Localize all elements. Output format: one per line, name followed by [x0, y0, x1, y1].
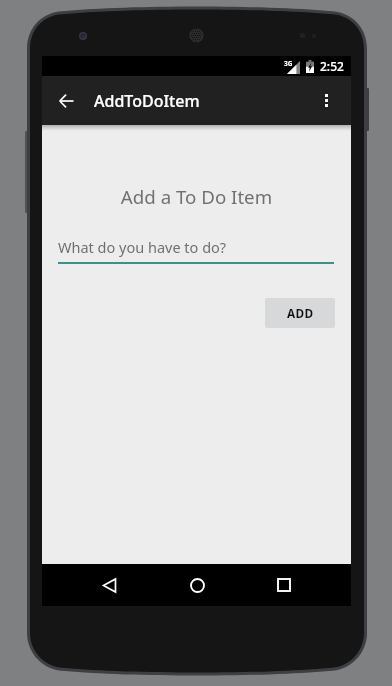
- staticText: What do you have to do?: [58, 237, 227, 257]
- staticText: Add a To Do Item: [42, 184, 351, 209]
- staticText: 2:52: [320, 58, 344, 74]
- staticText: 3G: [284, 59, 293, 68]
- button[interactable]: ADD: [265, 298, 335, 328]
- button[interactable]: More options: [305, 79, 348, 122]
- button[interactable]: Home: [176, 564, 218, 606]
- button[interactable]: What do you have to do?: [58, 237, 334, 264]
- button[interactable]: Navigate up: [45, 79, 88, 122]
- button[interactable]: Recents: [263, 564, 305, 606]
- staticText: ADD: [287, 305, 314, 321]
- staticText: AddToDoItem: [94, 90, 200, 112]
- button[interactable]: Back: [88, 564, 130, 606]
